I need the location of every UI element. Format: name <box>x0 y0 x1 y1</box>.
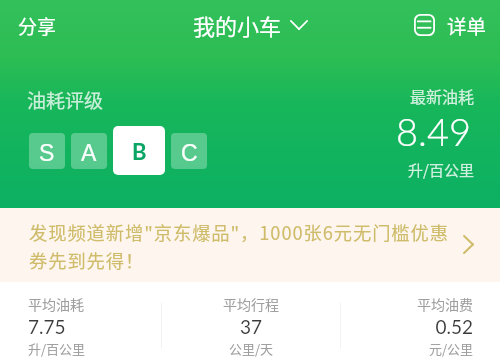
staticText: 8.49 <box>0 108 471 154</box>
button[interactable]: 平均油耗 <box>28 282 161 364</box>
staticText: 升/百公里 <box>0 159 474 181</box>
staticText: 最新油耗 <box>0 84 474 107</box>
staticText: B <box>132 138 147 164</box>
button[interactable]: A <box>71 133 107 169</box>
staticText: 公里/天 <box>162 339 340 358</box>
staticText: 发现频道新增"京东爆品"，1000张6元无门槛优惠 券先到先得！ <box>29 219 449 274</box>
staticText: 平均油费 <box>341 294 473 314</box>
button[interactable]: 我的小车 <box>190 6 313 44</box>
staticText: 油耗评级 <box>27 86 104 114</box>
button[interactable]: C <box>171 133 207 169</box>
staticText: 平均油耗 <box>28 294 161 314</box>
staticText: 37 <box>162 315 340 338</box>
button[interactable]: Detail list <box>410 8 491 42</box>
button[interactable]: 平均油费 <box>341 282 473 364</box>
staticText: 平均行程 <box>162 294 340 314</box>
staticText: 我的小车 <box>193 9 282 41</box>
button[interactable]: S <box>29 133 65 169</box>
button[interactable]: 分享 <box>10 6 65 46</box>
button[interactable]: B <box>113 126 165 175</box>
staticText: 升/百公里 <box>28 339 161 358</box>
staticText: 详单 <box>447 11 487 39</box>
staticText: A <box>81 140 97 166</box>
button[interactable]: 平均行程 <box>162 282 340 364</box>
staticText: C <box>181 140 198 166</box>
staticText: 分享 <box>18 12 57 40</box>
button[interactable]: 发现频道新增"京东爆品"，1000张6元无门槛优惠 券先到先得！ <box>0 208 500 282</box>
other: Detail list <box>414 14 435 36</box>
staticText: 7.75 <box>28 315 161 338</box>
staticText: S <box>39 140 55 166</box>
staticText: 0.52 <box>341 315 473 338</box>
staticText: 元/公里 <box>341 339 473 358</box>
